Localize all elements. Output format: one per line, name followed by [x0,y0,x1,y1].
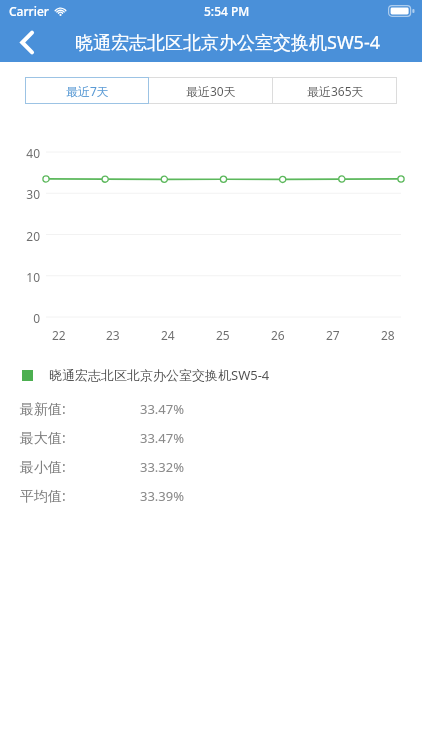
button[interactable]: 最近7天 [25,77,149,104]
staticText: 0 [33,310,40,325]
staticText: 最近7天 [66,83,109,99]
staticText: 最大值: [20,428,66,447]
staticText: 晓通宏志北区北京办公室交换机SW5-4 [75,30,381,55]
staticText: 23 [106,327,120,343]
staticText: 最近365天 [307,83,364,99]
button[interactable]: 最近30天 [149,77,273,104]
staticText: 33.32% [140,458,185,476]
staticText: 30 [26,186,40,201]
staticText: 33.47% [140,400,185,418]
staticText: 最近30天 [186,83,236,99]
staticText: 22 [52,327,66,343]
staticText: 10 [26,269,40,284]
staticText: 5:54 PM [204,3,250,19]
staticText: 33.47% [140,429,185,447]
staticText: 27 [326,327,340,343]
staticText: 25 [216,327,230,343]
staticText: 26 [271,327,285,343]
staticText: 20 [26,228,40,243]
staticText: 40 [26,145,40,160]
button[interactable]: Back [0,22,54,62]
staticText: 晓通宏志北区北京办公室交换机SW5-4 [49,366,270,384]
staticText: 最小值: [20,457,66,476]
staticText: 最新值: [20,399,66,418]
staticText: Carrier [9,3,49,19]
staticText: 28 [381,327,395,343]
staticText: 33.39% [140,487,185,505]
button[interactable]: 最近365天 [273,77,397,104]
staticText: 平均值: [20,486,66,505]
staticText: 24 [161,327,175,343]
